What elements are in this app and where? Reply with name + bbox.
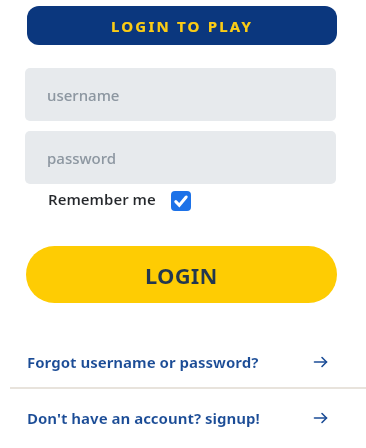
button[interactable]: password [25,131,336,184]
staticText: password [47,148,117,168]
staticText: Remember me [48,189,156,209]
button[interactable]: Forgot username or password? [27,352,328,372]
staticText: Don't have an account? signup! [27,408,260,428]
button[interactable]: Remember me [48,189,191,209]
button[interactable]: Don't have an account? signup! [27,408,328,428]
staticText: LOGIN TO PLAY [111,16,254,36]
button[interactable]: username [25,68,336,121]
staticText: LOGIN [145,260,218,290]
button[interactable]: LOGIN TO PLAY [27,6,337,45]
button[interactable]: LOGIN [26,246,337,303]
staticText: username [47,85,120,105]
staticText: Forgot username or password? [27,352,259,372]
